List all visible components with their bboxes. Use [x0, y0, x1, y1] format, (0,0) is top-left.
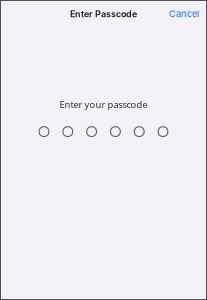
staticText: Enter Passcode [70, 9, 137, 19]
staticText: Enter your passcode [59, 98, 147, 111]
button[interactable]: Cancel [161, 2, 207, 23]
button[interactable]: Passcode [33, 123, 174, 140]
staticText: Cancel [169, 8, 199, 19]
